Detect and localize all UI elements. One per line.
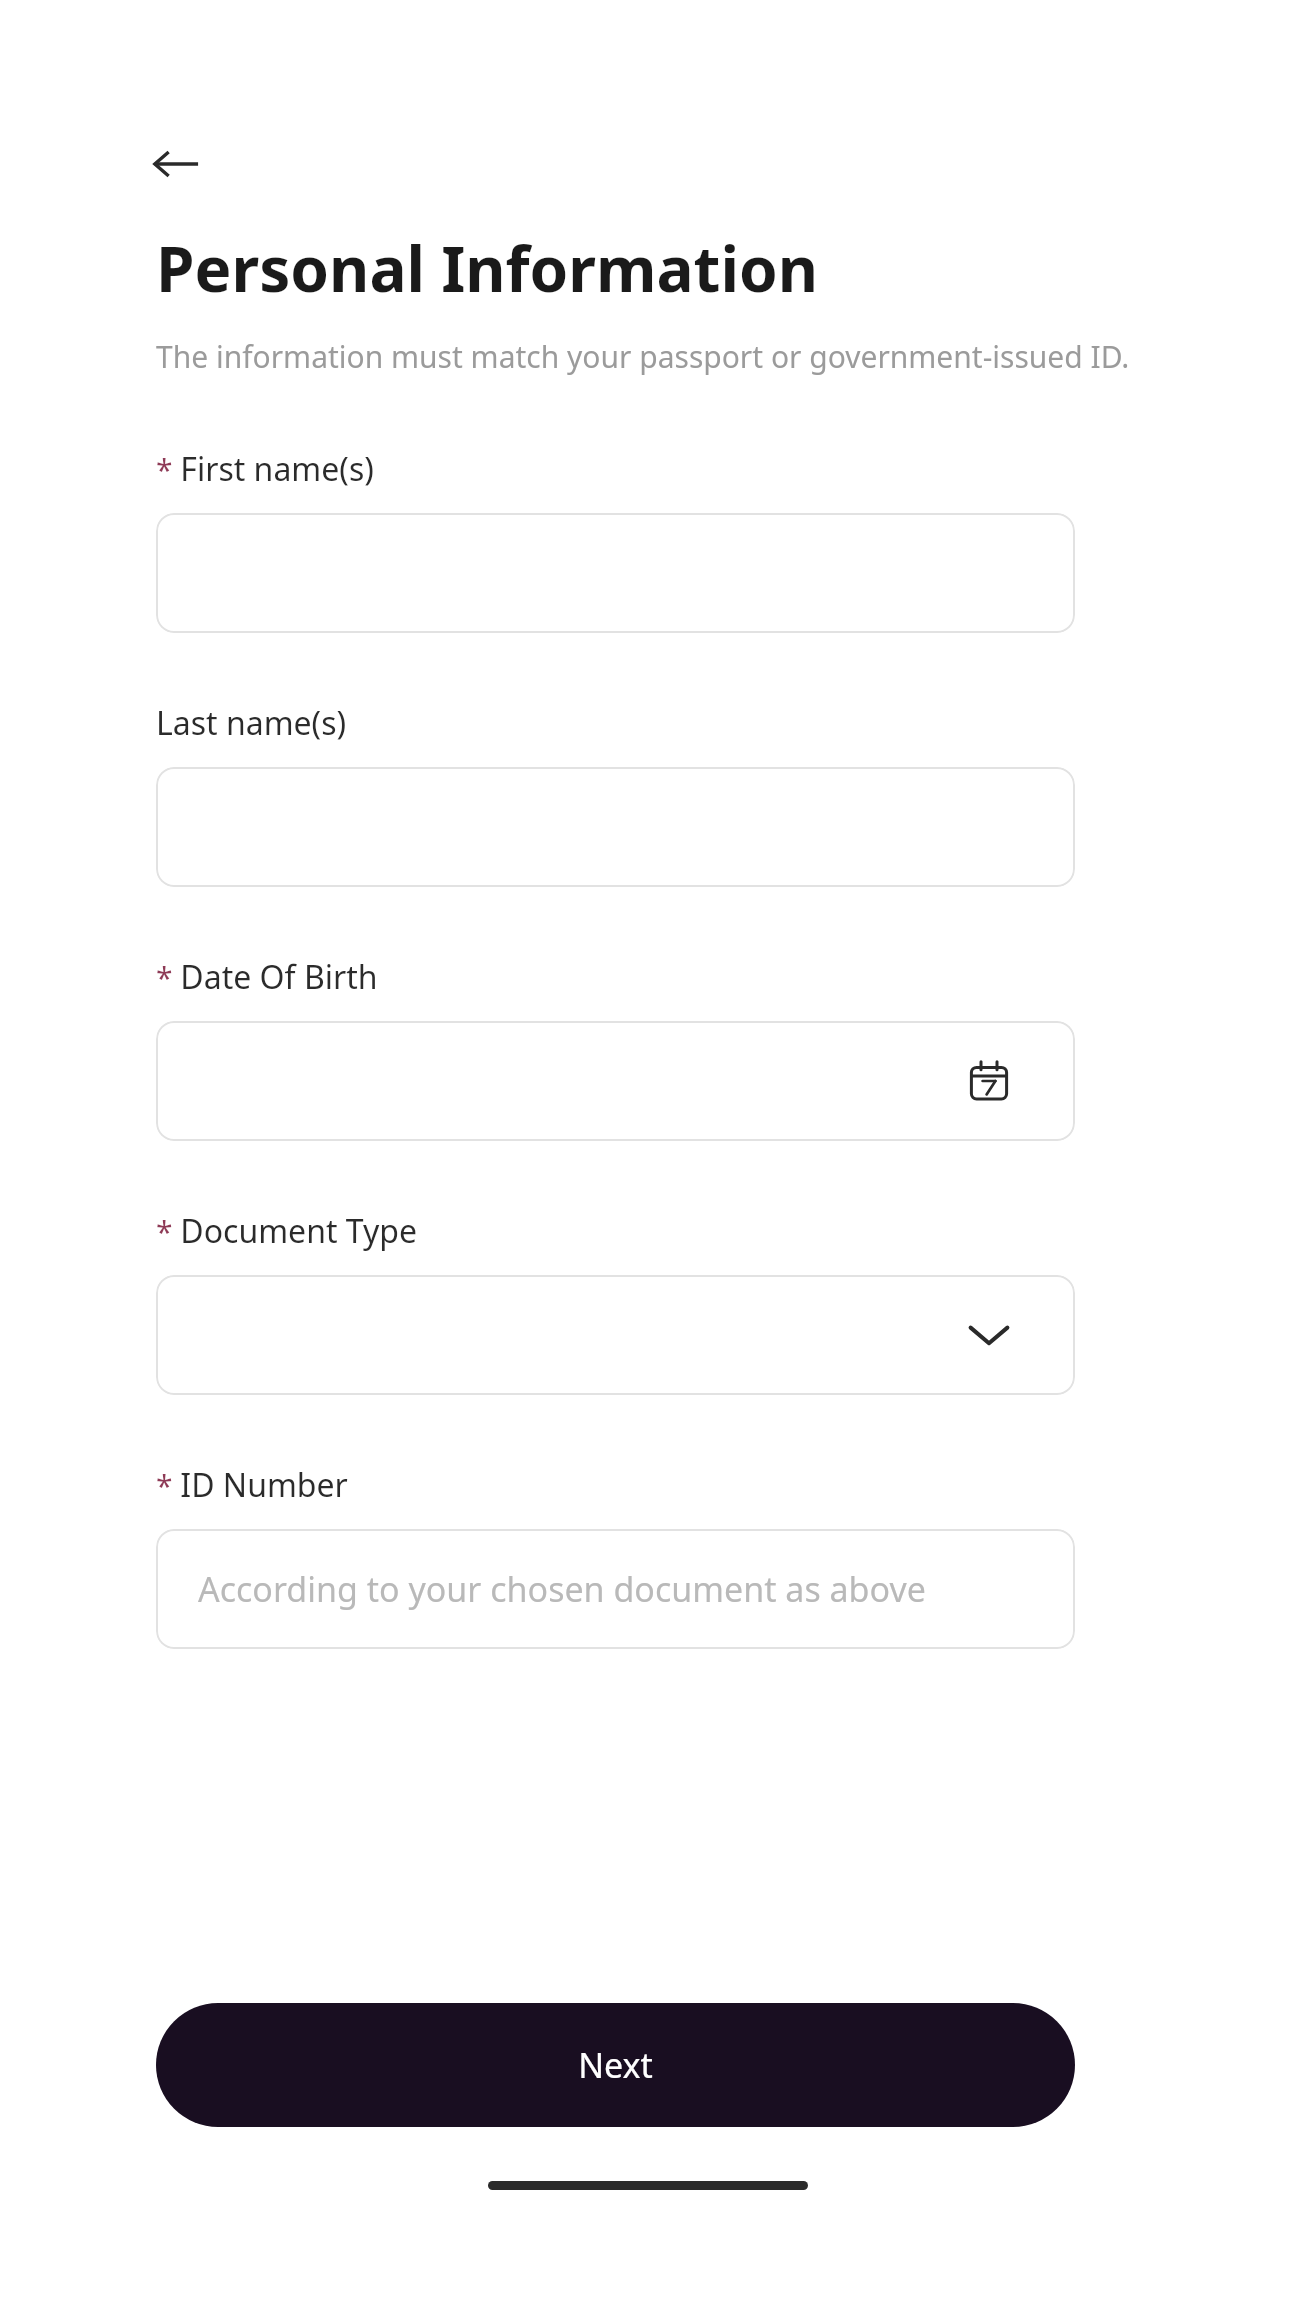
staticText: Personal Information	[156, 226, 819, 310]
staticText: Next	[578, 2042, 653, 2088]
staticText: According to your chosen document as abo…	[198, 1566, 926, 1612]
staticText: Last name(s)	[156, 701, 347, 745]
button[interactable]: Pick date	[156, 1021, 1075, 1141]
staticText: * First name(s)	[156, 447, 374, 491]
staticText: * Date Of Birth	[156, 955, 378, 999]
button[interactable]: Select document type	[156, 1275, 1075, 1395]
button[interactable]: According to your chosen document as abo…	[156, 1529, 1075, 1649]
staticText: * ID Number	[156, 1463, 348, 1507]
button[interactable]	[156, 513, 1075, 633]
staticText: * Document Type	[156, 1209, 418, 1253]
button[interactable]: Back	[140, 128, 212, 200]
staticText: The information must match your passport…	[156, 336, 1166, 377]
button[interactable]	[156, 767, 1075, 887]
button[interactable]: Next	[156, 2003, 1075, 2127]
